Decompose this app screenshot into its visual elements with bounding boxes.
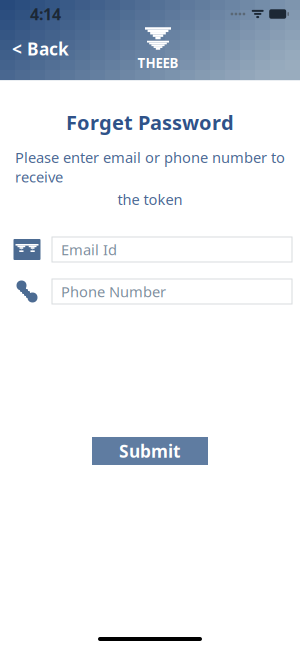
button[interactable]: Submit xyxy=(92,437,208,465)
staticText: Forget Password xyxy=(66,109,234,136)
button[interactable]: Email Id xyxy=(52,237,292,262)
staticText: Email Id xyxy=(61,240,117,259)
button[interactable]: < Back xyxy=(3,33,78,64)
staticText: Submit xyxy=(119,439,181,462)
staticText: THEEB xyxy=(137,54,178,72)
staticText: < Back xyxy=(12,37,69,60)
staticText: Phone Number xyxy=(61,282,166,301)
staticText: the token xyxy=(117,189,182,209)
button[interactable]: Phone Number xyxy=(52,279,292,304)
staticText: Please enter email or phone number to re… xyxy=(15,148,285,187)
staticText: 4:14 xyxy=(30,3,61,25)
